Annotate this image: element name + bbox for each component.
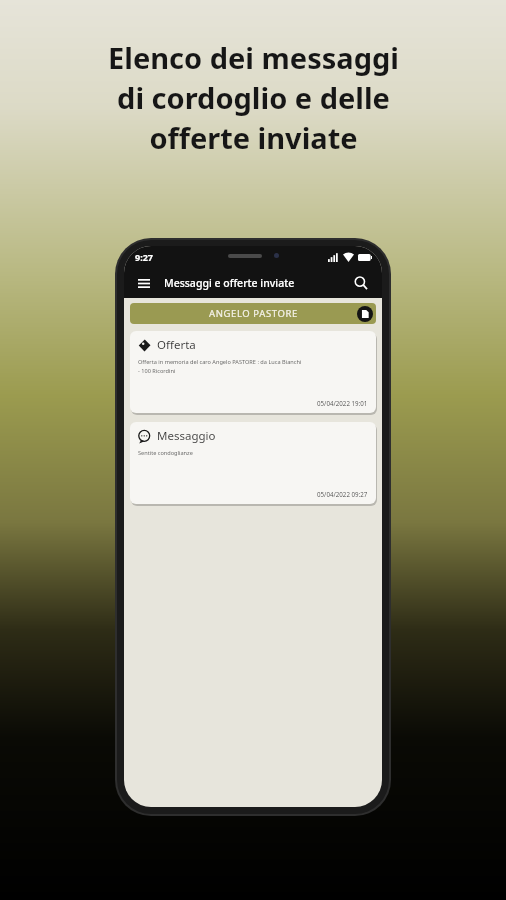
staticText: Elenco dei messaggi di cordoglio e delle… [108,38,399,158]
button[interactable]: ANGELO PASTORE [130,303,376,324]
button[interactable]: Offerta [130,331,376,413]
button[interactable]: Documento [357,306,373,322]
staticText: 05/04/2022 19:01 [317,399,368,407]
staticText: ANGELO PASTORE [209,307,298,320]
staticText: 9:27 [135,251,153,263]
staticText: Messaggio [157,428,216,444]
staticText: Sentite condoglianze [138,449,193,457]
button[interactable]: Search [350,272,372,294]
button[interactable]: Menu [134,273,154,293]
staticText: Offerta in memoria del caro Angelo PASTO… [138,358,302,375]
staticText: Messaggi e offerte inviate [164,276,350,290]
staticText: Offerta [157,337,196,353]
staticText: 05/04/2022 09:27 [317,490,368,498]
button[interactable]: Messaggio [130,422,376,504]
